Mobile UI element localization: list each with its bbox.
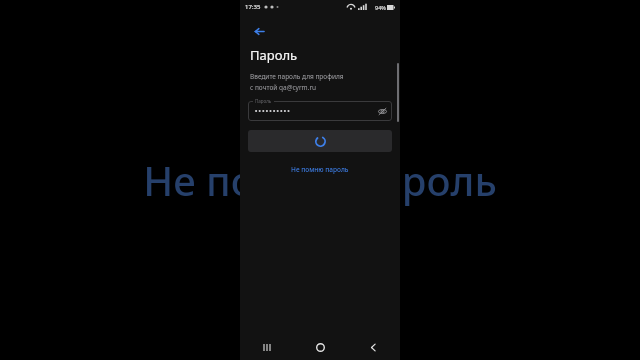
button[interactable]: Пароль	[248, 101, 392, 121]
button[interactable]: Не помню пароль	[287, 163, 353, 176]
staticText: Не помню пароль	[291, 165, 349, 174]
button[interactable]: Назад	[347, 334, 400, 360]
staticText: Введите пароль для профиля	[250, 72, 344, 81]
staticText: 94%	[375, 4, 386, 11]
button[interactable]: Последние приложения	[240, 334, 294, 360]
button[interactable]: Назад	[246, 18, 272, 44]
staticText: с почтой qa@cyrm.ru	[250, 83, 317, 92]
button[interactable]: Домой	[294, 334, 347, 360]
staticText: Пароль	[250, 46, 298, 64]
staticText: Пароль	[255, 98, 272, 104]
button[interactable]: Показать пароль	[376, 105, 388, 117]
staticText: Не помню пароль	[143, 153, 497, 207]
staticText: 17:35	[245, 3, 261, 11]
button[interactable]: Войти, загрузка	[248, 130, 392, 152]
